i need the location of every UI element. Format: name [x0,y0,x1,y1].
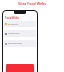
button[interactable]: Producers [4,21,36,27]
staticText: Vitra Food Webs [0,1,64,6]
staticText: Food Webs [5,16,19,20]
button[interactable]: Decomposers [4,40,36,47]
staticText: Consumers [8,32,20,35]
button[interactable] [6,64,34,72]
staticText: Producers [8,23,19,26]
button[interactable]: Consumers [4,30,36,37]
staticText: Decomposers [8,42,23,45]
